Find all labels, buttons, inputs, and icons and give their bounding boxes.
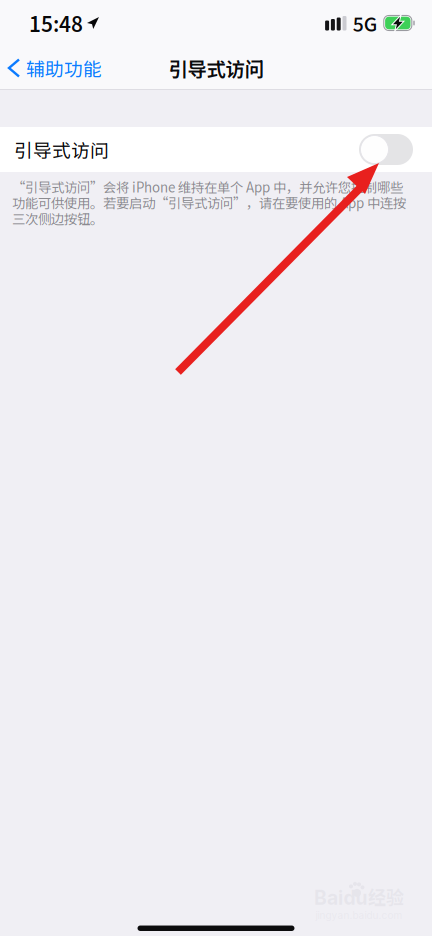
staticText: 15:48 xyxy=(29,8,83,38)
staticText: 引导式访问 xyxy=(168,54,263,82)
staticText: 辅助功能 xyxy=(26,54,102,81)
staticText: du xyxy=(343,886,367,909)
staticText: 经验 xyxy=(368,883,404,909)
staticText: 引导式访问 xyxy=(14,136,109,163)
button[interactable]: 引导式访问 xyxy=(0,127,432,172)
button[interactable]: 辅助功能 xyxy=(0,48,102,87)
staticText: “引导式访问”会将 iPhone 维持在单个 App 中，并允许您控制哪些 功能… xyxy=(12,177,406,228)
staticText: Bai xyxy=(314,886,343,909)
staticText: 5G xyxy=(353,9,378,37)
